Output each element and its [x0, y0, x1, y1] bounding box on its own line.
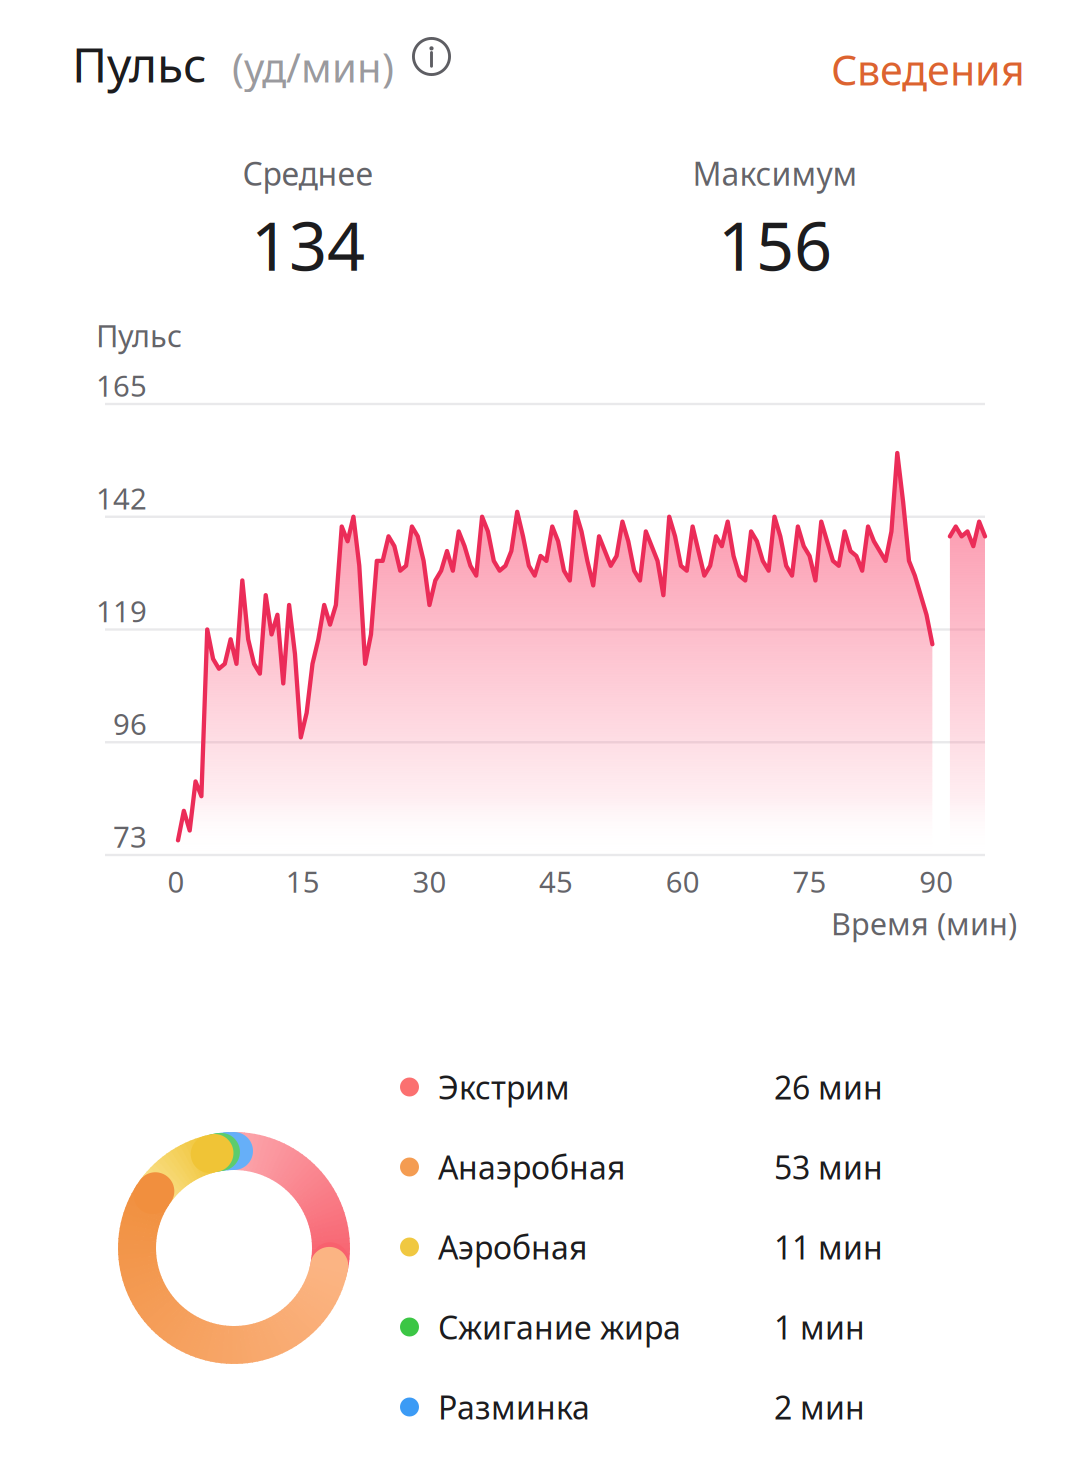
staticText: Анаэробная — [438, 1146, 625, 1188]
button[interactable]: Экстрим — [400, 1047, 1000, 1127]
staticText: Разминка — [438, 1386, 590, 1428]
button[interactable]: Анаэробная — [400, 1127, 1000, 1207]
staticText: 142 — [96, 479, 147, 518]
staticText: Сжигание жира — [438, 1306, 681, 1348]
staticText: 0 — [167, 862, 184, 901]
staticText: 2 мин — [774, 1386, 865, 1428]
staticText: 15 — [286, 862, 320, 901]
staticText: 45 — [539, 862, 573, 901]
staticText: 1 мин — [774, 1306, 865, 1348]
staticText: Экстрим — [438, 1066, 570, 1108]
staticText: Сведения — [831, 42, 1025, 97]
button[interactable]: Сжигание жира — [400, 1287, 1000, 1367]
staticText: 53 мин — [774, 1146, 883, 1188]
staticText: (уд/мин) — [232, 40, 394, 93]
staticText: 96 — [113, 704, 147, 743]
staticText: 75 — [792, 862, 826, 901]
button[interactable]: Аэробная — [400, 1207, 1000, 1287]
staticText: 134 — [251, 200, 365, 289]
staticText: Среднее — [242, 152, 373, 194]
staticText: 156 — [718, 200, 832, 289]
staticText: Время (мин) — [831, 903, 1017, 944]
staticText: 73 — [113, 817, 147, 856]
staticText: Максимум — [692, 152, 857, 194]
staticText: 26 мин — [774, 1066, 883, 1108]
staticText: 165 — [96, 366, 147, 405]
staticText: 60 — [666, 862, 700, 901]
staticText: Пульс — [96, 315, 182, 356]
staticText: 30 — [412, 862, 446, 901]
button[interactable]: Информация — [400, 25, 463, 88]
staticText: 11 мин — [774, 1226, 883, 1268]
staticText: Пульс — [72, 32, 207, 96]
staticText: Аэробная — [438, 1226, 587, 1268]
button[interactable]: Разминка — [400, 1367, 1000, 1447]
staticText: 119 — [96, 591, 147, 630]
staticText: 90 — [919, 862, 953, 901]
button[interactable]: Сведения — [815, 30, 1041, 109]
